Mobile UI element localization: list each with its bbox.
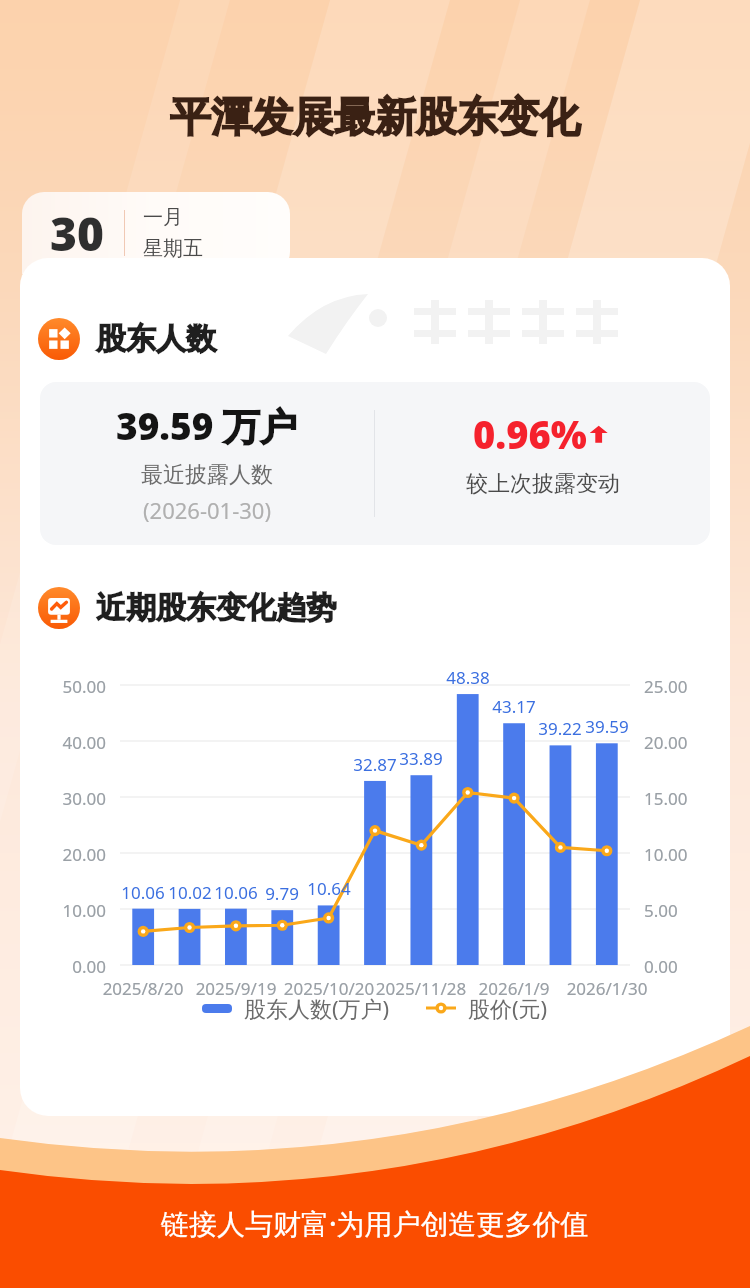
staticText: 2025/8/20 (91, 977, 195, 1000)
other: 近期股东变化趋势 (38, 587, 80, 629)
staticText: 股东人数 (96, 320, 216, 358)
staticText: 32.87 (349, 753, 401, 776)
staticText: 15.00 (644, 787, 706, 810)
staticText: 9.79 (256, 882, 308, 905)
staticText: 39.59 万户 (116, 400, 298, 451)
staticText: 10.06 (210, 881, 262, 904)
staticText: 2026/1/30 (555, 977, 659, 1000)
staticText: 20.00 (44, 843, 106, 866)
staticText: 平潭发展最新股东变化 (0, 92, 750, 144)
staticText: 30.00 (44, 787, 106, 810)
staticText: 0.00 (44, 955, 106, 978)
staticText: 最近披露人数 (141, 461, 273, 489)
staticText: 0.96% (473, 408, 587, 460)
staticText: 40.00 (44, 731, 106, 754)
staticText: 10.02 (164, 881, 216, 904)
staticText: 50.00 (44, 675, 106, 698)
staticText: 30 (50, 202, 104, 265)
staticText: 一月 (143, 205, 183, 230)
staticText: 0.00 (644, 955, 706, 978)
staticText: 2025/10/20 (277, 977, 381, 1000)
staticText: 48.38 (442, 666, 494, 689)
staticText: 星期五 (143, 236, 203, 261)
staticText: 近期股东变化趋势 (96, 589, 336, 627)
staticText: 较上次披露变动 (466, 470, 620, 498)
staticText: 39.22 (534, 717, 586, 740)
staticText: 2025/9/19 (184, 977, 288, 1000)
button[interactable]: 股价(元) (426, 993, 548, 1023)
staticText: 股东人数(万户) (244, 993, 390, 1023)
other: 股东人数 (38, 318, 80, 360)
staticText: 10.00 (44, 899, 106, 922)
staticText: 20.00 (644, 731, 706, 754)
staticText: 10.64 (303, 877, 355, 900)
button[interactable]: 股东人数(万户) (202, 993, 390, 1023)
button[interactable]: 近期股东变化趋势 (20, 587, 730, 629)
staticText: 10.00 (644, 843, 706, 866)
staticText: 25.00 (644, 675, 706, 698)
staticText: 39.59 (581, 715, 633, 738)
staticText: (2026-01-30) (143, 495, 272, 525)
staticText: 43.17 (488, 695, 540, 718)
staticText: 33.89 (395, 747, 447, 770)
staticText: 5.00 (644, 899, 706, 922)
button[interactable]: 股东人数 (20, 318, 730, 360)
staticText: 2025/11/28 (369, 977, 473, 1000)
staticText: 10.06 (117, 881, 169, 904)
staticText: 股价(元) (468, 993, 548, 1023)
staticText: 链接人与财富·为用户创造更多价值 (161, 1204, 589, 1242)
button[interactable]: 39.59 万户 (40, 382, 710, 545)
staticText: 2026/1/9 (462, 977, 566, 1000)
